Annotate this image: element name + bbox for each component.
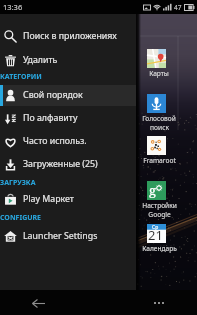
staticText: Загруженные (25) bbox=[23, 158, 98, 170]
button[interactable]: Back bbox=[26, 291, 50, 315]
staticText: Голосовой bbox=[142, 114, 176, 123]
staticText: Часто использ. bbox=[23, 135, 87, 147]
button[interactable]: Голосовой bbox=[133, 94, 179, 132]
button[interactable]: Поиск в приложениях bbox=[0, 25, 136, 47]
button[interactable]: По алфавиту bbox=[0, 107, 136, 129]
staticText: По алфавиту bbox=[23, 112, 78, 124]
button[interactable]: Framaroot bbox=[133, 136, 179, 165]
staticText: Framaroot bbox=[143, 156, 176, 165]
staticText: Карты bbox=[149, 69, 169, 78]
staticText: КАТЕГОРИИ bbox=[0, 72, 42, 82]
staticText: 21 bbox=[148, 226, 163, 244]
button[interactable]: Календарь bbox=[133, 224, 179, 253]
button[interactable]: Удалить bbox=[0, 49, 136, 71]
staticText: Поиск в приложениях bbox=[23, 30, 117, 42]
staticText: Удалить bbox=[23, 54, 58, 66]
button[interactable]: Launcher Settings bbox=[0, 225, 136, 247]
staticText: Ср bbox=[152, 224, 159, 231]
button[interactable]: Настройки bbox=[133, 181, 179, 219]
staticText: g bbox=[149, 181, 156, 199]
staticText: ЗАГРУЗКА bbox=[0, 178, 36, 188]
staticText: 13:36 bbox=[3, 2, 23, 12]
staticText: 47 bbox=[174, 3, 182, 12]
button[interactable]: Загруженные (25) bbox=[0, 153, 136, 175]
button[interactable]: Play Маркет bbox=[0, 188, 136, 210]
staticText: поиск bbox=[150, 123, 169, 132]
button[interactable]: Recent apps bbox=[147, 291, 171, 315]
staticText: Play Маркет bbox=[23, 193, 74, 205]
button[interactable]: Часто использ. bbox=[0, 130, 136, 152]
staticText: Launcher Settings bbox=[23, 230, 98, 242]
staticText: Календарь bbox=[142, 244, 177, 253]
staticText: Настройки bbox=[142, 201, 177, 210]
button[interactable]: Карты bbox=[133, 49, 179, 78]
staticText: CONFIGURE bbox=[0, 213, 42, 223]
button[interactable] bbox=[0, 85, 136, 106]
button[interactable]: Свой порядок bbox=[0, 84, 136, 106]
staticText: Google bbox=[148, 210, 171, 219]
staticText: Свой порядок bbox=[23, 89, 83, 101]
